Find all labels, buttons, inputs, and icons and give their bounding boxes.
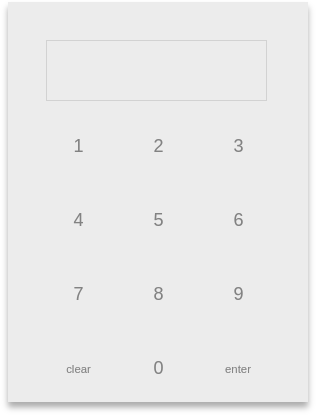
staticText: 1 [73,136,84,156]
staticText: 9 [233,284,244,304]
staticText: clear [66,363,91,376]
button[interactable]: 5 [118,183,198,257]
button[interactable]: 6 [198,183,278,257]
staticText: 2 [153,136,164,156]
button[interactable]: 0 [118,331,198,405]
button[interactable]: 8 [118,257,198,331]
staticText: enter [225,363,251,376]
staticText: 0 [153,358,164,378]
staticText: 7 [73,284,84,304]
button[interactable]: 2 [118,109,198,183]
button[interactable]: 1 [38,109,118,183]
button[interactable]: clear [38,332,118,406]
button[interactable]: 3 [198,109,278,183]
button[interactable]: 7 [38,257,118,331]
staticText: 5 [153,210,164,230]
staticText: 4 [73,210,84,230]
button[interactable]: 4 [38,183,118,257]
staticText: 6 [233,210,244,230]
staticText: 8 [153,284,164,304]
button[interactable]: enter [198,332,278,406]
button[interactable]: 9 [198,257,278,331]
button[interactable]: Entry display [46,40,267,101]
staticText: 3 [233,136,244,156]
